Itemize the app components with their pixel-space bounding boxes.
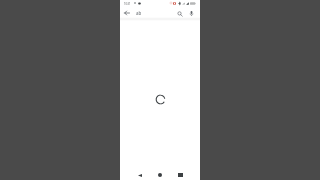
button[interactable]: Home (154, 169, 166, 180)
button[interactable]: Voice search (187, 9, 196, 18)
button[interactable]: Search (175, 9, 184, 18)
staticText: 10:31 (124, 2, 131, 5)
button[interactable]: Recent apps (174, 169, 186, 180)
staticText: ab (136, 10, 142, 16)
button[interactable]: Navigate up (122, 8, 131, 17)
button[interactable]: Back (134, 169, 146, 180)
